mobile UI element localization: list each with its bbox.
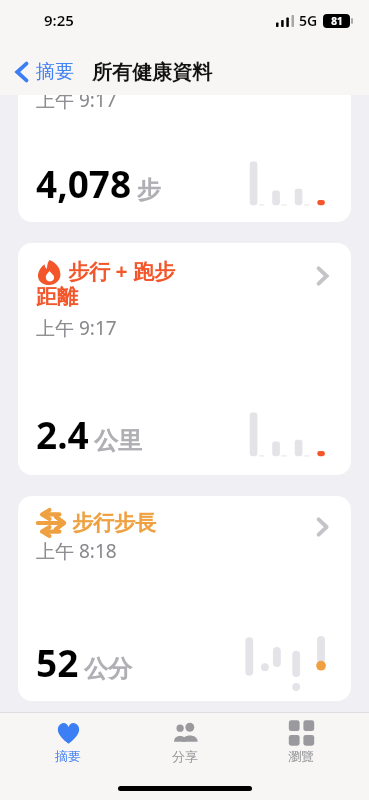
staticText: 9:25	[44, 10, 74, 30]
staticText: 5G	[299, 11, 318, 30]
staticText: 2.4	[36, 409, 89, 459]
staticText: 距離	[36, 284, 78, 310]
staticText: 4,078	[36, 158, 132, 208]
staticText: 上午 9:17	[36, 315, 117, 341]
staticText: 所有健康資料	[92, 60, 212, 85]
button[interactable]: 上午 9:17	[18, 95, 351, 222]
staticText: 52	[36, 637, 79, 687]
button[interactable]: 摘要	[10, 56, 78, 88]
staticText: 分享	[172, 748, 198, 764]
staticText: 摘要	[55, 748, 81, 764]
button[interactable]: 摘要	[20, 713, 116, 770]
button[interactable]: 分享	[137, 713, 233, 770]
button[interactable]: 瀏覽	[253, 713, 349, 770]
staticText: 步行步長	[72, 510, 156, 536]
staticText: 上午 9:17	[36, 95, 117, 113]
staticText: 步行 + 跑步	[68, 257, 175, 286]
staticText: 81	[331, 14, 343, 28]
button[interactable]: 查看詳細資料	[307, 261, 337, 291]
button[interactable]: 步行步長	[18, 496, 351, 701]
staticText: 步	[137, 175, 161, 205]
staticText: 上午 8:18	[36, 538, 117, 564]
staticText: 公分	[84, 654, 132, 684]
staticText: 瀏覽	[288, 748, 314, 764]
button[interactable]: 步行 + 跑步	[18, 243, 351, 475]
button[interactable]: 查看詳細資料	[307, 512, 337, 542]
staticText: 摘要	[36, 60, 74, 84]
staticText: 公里	[94, 426, 142, 456]
